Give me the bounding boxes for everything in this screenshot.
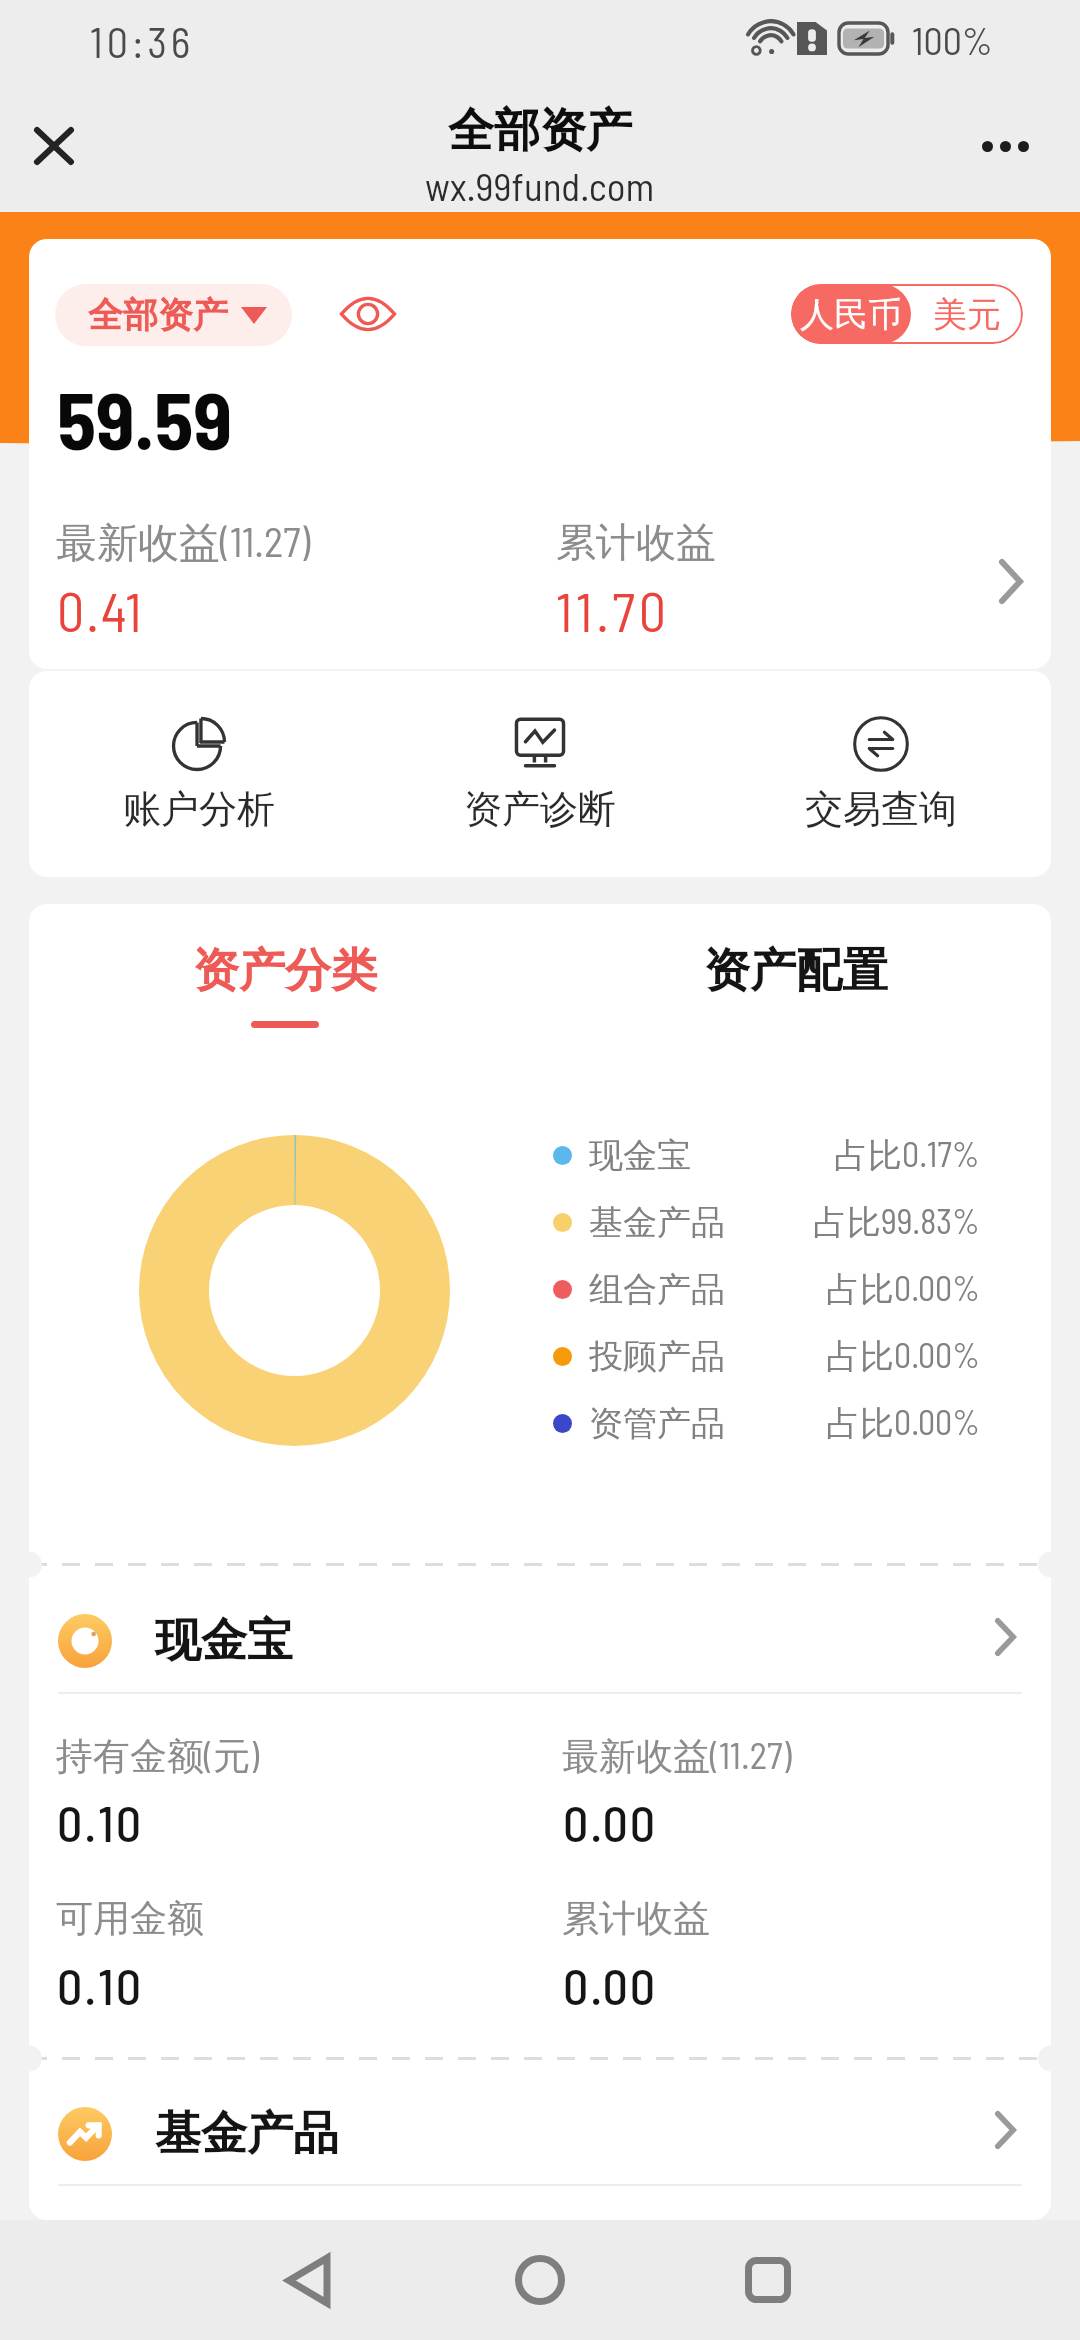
- staticText: 账户分析: [123, 785, 275, 833]
- staticText: 59.59: [57, 370, 232, 466]
- staticText: 可用金额: [56, 1895, 204, 1942]
- button[interactable]: Recent apps: [708, 2230, 828, 2330]
- button[interactable]: More options: [961, 106, 1049, 186]
- button[interactable]: 基金产品: [29, 2095, 1051, 2173]
- button[interactable]: Back: [248, 2230, 368, 2330]
- staticText: 100%: [912, 17, 993, 63]
- staticText: 持有金额(元): [56, 1732, 259, 1780]
- staticText: 占比99.83%: [813, 1200, 980, 1244]
- staticText: 0.10: [57, 1792, 144, 1852]
- staticText: 现金宝: [589, 1134, 691, 1177]
- staticText: 最新收益(11.27): [562, 1732, 792, 1780]
- staticText: 交易查询: [805, 785, 957, 833]
- staticText: 投顾产品: [589, 1335, 725, 1378]
- staticText: 0.00: [563, 1955, 658, 2015]
- staticText: 0.41: [57, 578, 144, 643]
- button[interactable]: 人民币: [791, 284, 911, 344]
- staticText: 全部资产: [88, 293, 228, 337]
- button[interactable]: 资产分类: [29, 942, 540, 1028]
- staticText: 美元: [933, 293, 1001, 336]
- staticText: 资管产品: [589, 1402, 725, 1445]
- button[interactable]: View details: [961, 531, 1051, 631]
- staticText: wx.99fund.com: [425, 162, 655, 209]
- button[interactable]: Toggle balance visibility: [328, 274, 408, 354]
- staticText: 资产诊断: [464, 785, 616, 833]
- staticText: 0.10: [57, 1955, 144, 2015]
- staticText: 基金产品: [155, 2105, 339, 2163]
- button[interactable]: 全部资产: [55, 284, 292, 346]
- staticText: 人民币: [800, 293, 902, 336]
- button[interactable]: 美元: [911, 284, 1023, 344]
- button[interactable]: 资产诊断: [430, 671, 650, 877]
- button[interactable]: Close: [14, 106, 94, 186]
- staticText: 现金宝: [155, 1612, 293, 1670]
- staticText: 0.00: [563, 1792, 658, 1852]
- staticText: 资产配置: [704, 942, 888, 1000]
- staticText: 占比0.00%: [826, 1267, 980, 1311]
- staticText: 11.70: [556, 578, 671, 643]
- staticText: 占比0.00%: [826, 1401, 980, 1445]
- staticText: 全部资产: [448, 102, 632, 160]
- button[interactable]: 账户分析: [89, 671, 309, 877]
- button[interactable]: 交易查询: [771, 671, 991, 877]
- staticText: 累计收益: [556, 517, 716, 567]
- staticText: 最新收益(11.27): [56, 516, 311, 569]
- button[interactable]: Home: [480, 2230, 600, 2330]
- staticText: 占比0.00%: [826, 1334, 980, 1378]
- button[interactable]: 资产配置: [540, 942, 1051, 1000]
- staticText: 累计收益: [562, 1895, 710, 1942]
- staticText: 占比0.17%: [834, 1133, 980, 1177]
- staticText: 基金产品: [589, 1201, 725, 1244]
- staticText: 组合产品: [589, 1268, 725, 1311]
- button[interactable]: 现金宝: [29, 1602, 1051, 1680]
- staticText: 资产分类: [193, 942, 377, 1000]
- staticText: 10:36: [90, 16, 195, 66]
